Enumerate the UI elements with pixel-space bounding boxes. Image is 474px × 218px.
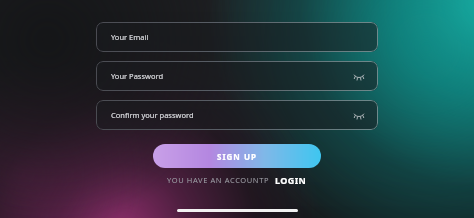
button[interactable]: Toggle password visibility [352,69,366,83]
staticText: LOGIN [275,174,307,186]
button[interactable]: LOGIN [275,174,307,186]
staticText: Confirm your password [111,110,194,120]
button[interactable]: Confirm your password [96,100,378,130]
staticText: SIGN UP [217,151,257,162]
button[interactable]: SIGN UP [153,144,321,168]
button[interactable]: Your Email [96,22,378,52]
staticText: Your Password [111,71,164,81]
staticText: YOU HAVE AN ACCOUNTP [167,175,270,185]
button[interactable]: Your Password [96,61,378,91]
button[interactable]: Toggle password visibility [352,108,366,122]
staticText: Your Email [111,32,149,42]
